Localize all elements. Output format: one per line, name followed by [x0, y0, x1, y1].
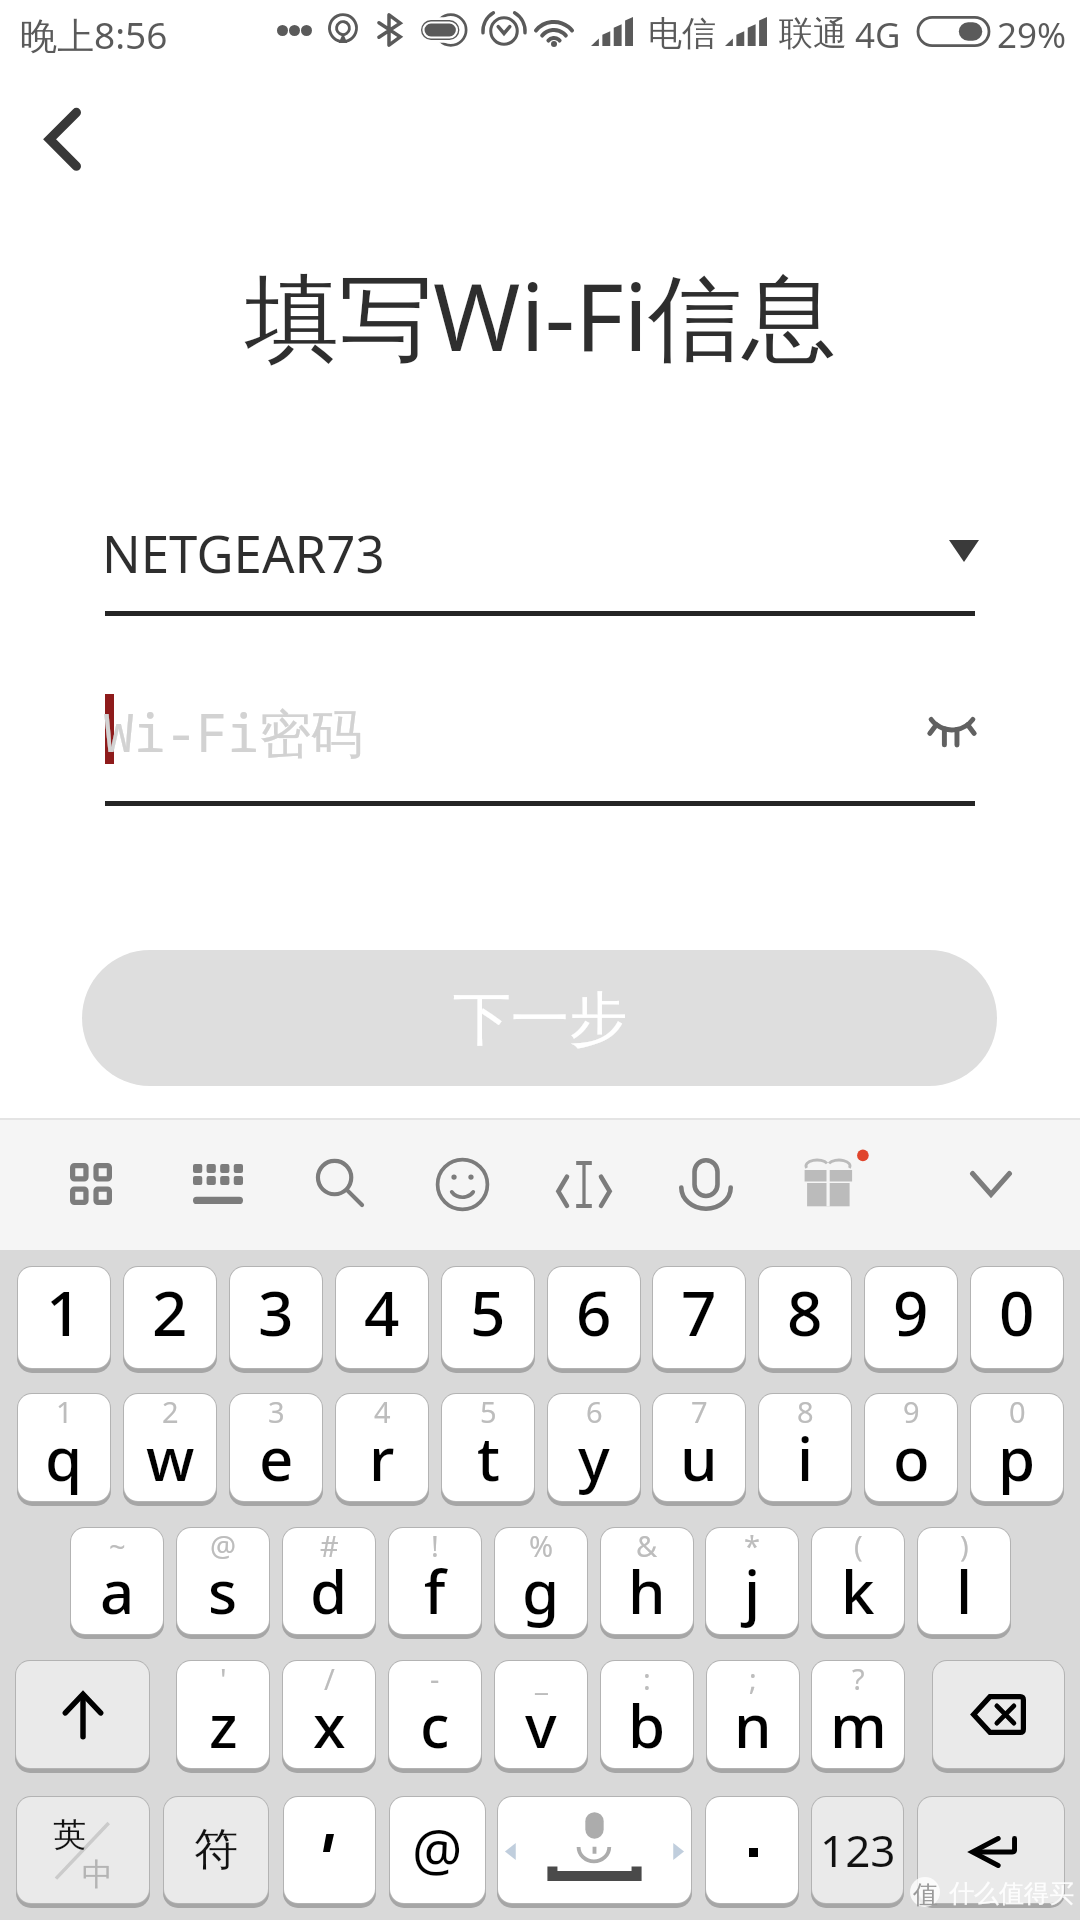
staticText: 4: [364, 1270, 400, 1354]
button[interactable]: 符: [164, 1797, 268, 1903]
staticText: 2: [152, 1270, 188, 1354]
staticText: 29%: [997, 11, 1067, 59]
button[interactable]: &: [601, 1528, 693, 1634]
staticText: ': [220, 1661, 227, 1698]
button[interactable]: Text editing: [538, 1138, 630, 1230]
button[interactable]: 5: [442, 1394, 534, 1501]
staticText: 1: [46, 1270, 82, 1354]
staticText: 7: [681, 1270, 717, 1354]
button[interactable]: ;: [707, 1661, 799, 1768]
staticText: @: [210, 1528, 237, 1565]
staticText: 1: [56, 1394, 73, 1431]
staticText: 4G: [855, 11, 901, 59]
button[interactable]: 6: [548, 1267, 640, 1368]
staticText: ;: [749, 1661, 757, 1698]
staticText: t: [477, 1417, 500, 1499]
staticText: 0: [999, 1270, 1035, 1354]
staticText: a: [100, 1550, 135, 1632]
staticText: 0: [1009, 1394, 1026, 1431]
button[interactable]: Emoji: [416, 1138, 508, 1230]
button[interactable]: 下一步: [82, 950, 997, 1086]
staticText: NETGEAR73: [102, 518, 385, 587]
button[interactable]: [706, 1797, 798, 1903]
button[interactable]: @: [390, 1797, 485, 1903]
button[interactable]: Grid: [45, 1138, 137, 1230]
button[interactable]: ~: [71, 1528, 163, 1634]
button[interactable]: Gifts: [783, 1135, 875, 1227]
staticText: ~: [109, 1528, 126, 1565]
button[interactable]: -: [389, 1661, 481, 1768]
button[interactable]: 7: [653, 1394, 745, 1501]
button[interactable]: 8: [759, 1267, 851, 1368]
button[interactable]: 8: [759, 1394, 851, 1501]
staticText: ): [960, 1528, 969, 1565]
button[interactable]: %: [495, 1528, 587, 1634]
button[interactable]: Show password: [900, 688, 990, 800]
button[interactable]: *: [706, 1528, 798, 1634]
staticText: 3: [268, 1394, 285, 1431]
button[interactable]: 4: [336, 1267, 428, 1368]
staticText: (: [854, 1528, 863, 1565]
button[interactable]: Keyboard: [172, 1138, 264, 1230]
button[interactable]: NETGEAR73: [105, 515, 975, 613]
button[interactable]: [498, 1797, 691, 1903]
button[interactable]: 5: [442, 1267, 534, 1368]
button[interactable]: !: [389, 1528, 481, 1634]
staticText: x: [313, 1684, 346, 1766]
staticText: c: [420, 1684, 450, 1766]
button[interactable]: ': [177, 1661, 269, 1768]
staticText: 9: [893, 1270, 929, 1354]
staticText: 英: [53, 1814, 86, 1856]
button[interactable]: @: [177, 1528, 269, 1634]
staticText: q: [45, 1417, 83, 1499]
button[interactable]: _: [495, 1661, 587, 1768]
staticText: w: [146, 1417, 195, 1499]
button[interactable]: [16, 1661, 149, 1768]
staticText: 4: [374, 1394, 391, 1431]
button[interactable]: 0: [971, 1394, 1063, 1501]
button[interactable]: Wi-Fi密码: [105, 688, 975, 800]
button[interactable]: 3: [230, 1394, 322, 1501]
button[interactable]: 9: [865, 1394, 957, 1501]
staticText: r: [369, 1417, 395, 1499]
staticText: 8: [797, 1394, 814, 1431]
staticText: e: [259, 1417, 294, 1499]
staticText: n: [734, 1684, 772, 1766]
staticText: m: [830, 1684, 887, 1766]
button[interactable]: Back: [14, 88, 114, 188]
button[interactable]: 123: [812, 1797, 903, 1903]
staticText: 值: [913, 1879, 938, 1910]
button[interactable]: 7: [653, 1267, 745, 1368]
button[interactable]: 6: [548, 1394, 640, 1501]
button[interactable]: [284, 1797, 375, 1903]
staticText: i: [797, 1417, 814, 1499]
button[interactable]: [933, 1661, 1064, 1768]
button[interactable]: Search: [293, 1137, 385, 1229]
staticText: j: [744, 1550, 761, 1632]
button[interactable]: Hide keyboard: [945, 1138, 1037, 1230]
button[interactable]: Voice input: [660, 1138, 752, 1230]
button[interactable]: 1: [18, 1394, 110, 1501]
staticText: 联通: [779, 12, 847, 55]
staticText: h: [628, 1550, 666, 1632]
button[interactable]: (: [812, 1528, 904, 1634]
button[interactable]: 9: [865, 1267, 957, 1368]
button[interactable]: /: [283, 1661, 375, 1768]
button[interactable]: 4: [336, 1394, 428, 1501]
button[interactable]: 2: [124, 1394, 216, 1501]
staticText: :: [643, 1661, 651, 1698]
button[interactable]: ): [918, 1528, 1010, 1634]
button[interactable]: 英: [17, 1797, 149, 1903]
button[interactable]: :: [601, 1661, 693, 1768]
staticText: *: [744, 1528, 760, 1565]
button[interactable]: 1: [18, 1267, 110, 1368]
button[interactable]: #: [283, 1528, 375, 1634]
button[interactable]: 2: [124, 1267, 216, 1368]
staticText: u: [680, 1417, 718, 1499]
button[interactable]: 0: [971, 1267, 1063, 1368]
button[interactable]: [918, 1797, 1064, 1903]
staticText: 下一步: [453, 983, 627, 1056]
button[interactable]: 3: [230, 1267, 322, 1368]
button[interactable]: ?: [812, 1661, 904, 1768]
staticText: Wi-Fi密码: [103, 696, 364, 767]
